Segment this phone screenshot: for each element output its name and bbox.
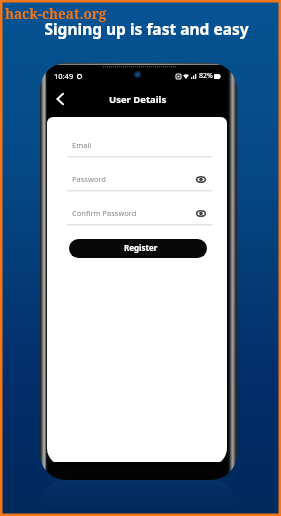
button[interactable]: Register xyxy=(69,239,207,258)
button[interactable]: Toggle password visibility xyxy=(195,173,207,185)
staticText: 82% xyxy=(199,71,213,81)
button[interactable]: Toggle password visibility xyxy=(195,207,207,219)
staticText: 10:49 xyxy=(54,71,74,81)
staticText: Signing up is fast and easy xyxy=(6,18,281,39)
staticText: Confirm Password xyxy=(72,208,137,218)
staticText: Email xyxy=(72,140,92,150)
staticText: Password xyxy=(72,174,106,184)
staticText: Register xyxy=(124,242,158,253)
staticText: hack-cheat.org xyxy=(5,5,107,23)
button[interactable]: Back xyxy=(49,88,71,110)
staticText: User Details xyxy=(109,93,167,106)
